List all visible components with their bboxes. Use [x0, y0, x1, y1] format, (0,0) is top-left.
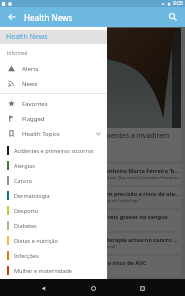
- staticText: 9:05: [173, 0, 183, 7]
- button[interactable]: Alergias: [0, 158, 107, 173]
- staticText: Health News: [6, 32, 48, 42]
- staticText: Consumo diário de café pode reduzir o ri…: [6, 259, 146, 266]
- staticText: Diabetes: [14, 222, 37, 229]
- button[interactable]: Qualidade da água em Portugal: engenheir…: [3, 164, 181, 185]
- staticText: News: [22, 80, 38, 88]
- staticText: Fonte: Relatório Anual dos Serviços de Á…: [6, 175, 181, 181]
- button[interactable]: Search: [166, 10, 180, 24]
- button[interactable]: Mulher e maternidade: [0, 263, 107, 278]
- staticText: Acidentes e primeiros socorros: [14, 147, 94, 154]
- button[interactable]: Nova terapia combinada com quimioterapia…: [3, 233, 181, 254]
- staticText: Estudo publicado no "Journal of the Amer…: [6, 198, 141, 204]
- staticText: Investigação divulgada na conferência "C…: [6, 221, 104, 227]
- staticText: Health Topics: [22, 130, 60, 138]
- button[interactable]: Consumo diário de café pode reduzir o ri…: [3, 256, 181, 277]
- button[interactable]: Infecções: [0, 248, 107, 263]
- button[interactable]: Flagged: [0, 111, 107, 126]
- staticText: Desporto: [14, 207, 39, 214]
- staticText: Informed: [7, 50, 28, 56]
- button[interactable]: Alerts: [0, 61, 107, 76]
- button[interactable]: Back: [36, 281, 50, 295]
- staticText: Resultados preliminares publicados no "M…: [6, 244, 117, 250]
- button[interactable]: Dermatologia: [0, 188, 107, 203]
- staticText: Cancro: [14, 177, 33, 184]
- button[interactable]: Favorites: [0, 96, 107, 111]
- staticText: Covid-19: falta de camas leva doentes a …: [6, 131, 181, 149]
- button[interactable]: Recent apps: [135, 281, 149, 295]
- staticText: Flagged: [22, 115, 45, 123]
- staticText: Infecções: [14, 252, 39, 259]
- button[interactable]: Diabetes: [0, 218, 107, 233]
- staticText: Favorites: [22, 100, 48, 108]
- staticText: Dermatologia: [14, 192, 50, 199]
- staticText: Dietas e nutrição: [14, 237, 58, 244]
- button[interactable]: News: [0, 76, 107, 91]
- button[interactable]: Covid-19: falta de camas leva doentes a …: [3, 28, 181, 161]
- staticText: Doença cardiovascular associada a níveis…: [6, 213, 168, 220]
- staticText: Alerts: [22, 65, 39, 73]
- button[interactable]: Doença cardiovascular associada a níveis…: [3, 210, 181, 231]
- button[interactable]: Acidentes e primeiros socorros: [0, 143, 107, 158]
- staticText: Health News: [24, 12, 73, 23]
- button[interactable]: Home: [86, 281, 100, 295]
- button[interactable]: Dietas e nutrição: [0, 233, 107, 248]
- button[interactable]: Cancro: [0, 173, 107, 188]
- staticText: Nova terapia combinada com quimioterapia…: [6, 236, 181, 243]
- staticText: Alergias: [14, 162, 35, 169]
- staticText: Qualidade da água em Portugal: engenheir…: [6, 167, 181, 174]
- button[interactable]: Back: [5, 10, 19, 24]
- button[interactable]: Novo exame de imagem identifica com prec…: [3, 187, 181, 208]
- button[interactable]: Health Topics: [0, 126, 107, 141]
- staticText: Novo exame de imagem identifica com prec…: [6, 190, 181, 197]
- button[interactable]: Desporto: [0, 203, 107, 218]
- staticText: Mulher e maternidade: [14, 267, 72, 274]
